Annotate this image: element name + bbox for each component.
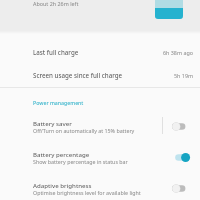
- staticText: Last full charge: [33, 48, 79, 56]
- button[interactable]: On: [170, 151, 192, 164]
- staticText: 5h 19m: [0, 72, 193, 79]
- staticText: Show battery percentage in status bar: [33, 158, 128, 165]
- staticText: Battery percentage: [33, 150, 90, 158]
- button[interactable]: Off: [170, 182, 192, 195]
- staticText: Power management: [33, 99, 84, 106]
- staticText: About 2h 26m left: [33, 0, 79, 7]
- button[interactable]: Screen usage since full charge: [0, 63, 200, 86]
- staticText: Battery saver: [33, 119, 72, 127]
- staticText: Off/Turn on automatically at 15% battery: [33, 127, 135, 134]
- staticText: Screen usage since full charge: [33, 71, 123, 79]
- button[interactable]: Off: [170, 120, 192, 133]
- button[interactable]: Adaptive brightness: [0, 173, 200, 200]
- staticText: 6h 38m ago: [0, 49, 193, 56]
- button[interactable]: Last full charge: [0, 40, 200, 63]
- staticText: Adaptive brightness: [33, 181, 92, 189]
- button[interactable]: Battery saver: [0, 111, 200, 142]
- button[interactable]: Battery percentage: [0, 142, 200, 173]
- staticText: Optimise brightness level for available …: [33, 189, 141, 196]
